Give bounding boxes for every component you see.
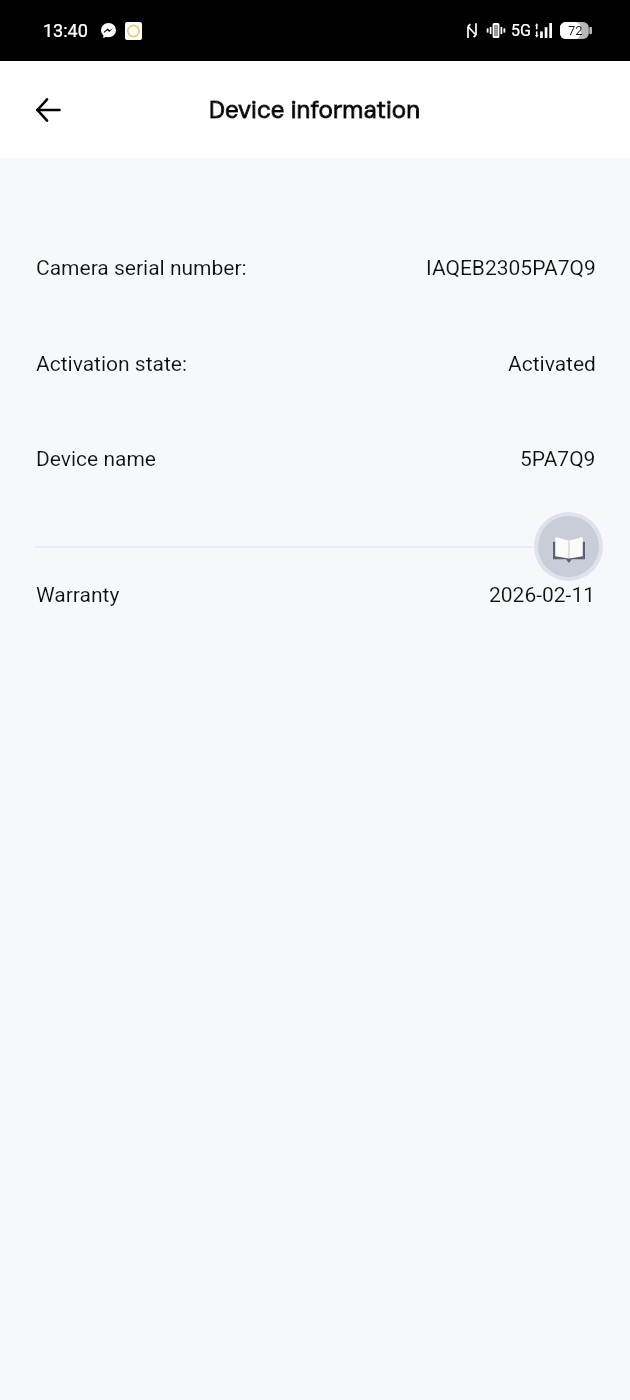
staticText: 2026-02-11 <box>489 583 596 608</box>
staticText: Device information <box>209 94 421 125</box>
button[interactable]: Warranty <box>0 571 630 619</box>
staticText: IAQEB2305PA7Q9 <box>426 256 596 281</box>
button[interactable]: Device name <box>0 435 630 483</box>
staticText: Camera serial number: <box>36 256 247 281</box>
button[interactable]: Manual <box>534 512 603 581</box>
staticText: Activated <box>508 352 596 377</box>
staticText: Warranty <box>36 583 120 608</box>
button[interactable]: Back <box>22 84 74 136</box>
staticText: 72 <box>568 23 583 38</box>
staticText: Device information <box>209 94 421 125</box>
staticText: 13:40 <box>43 20 88 41</box>
button[interactable]: Activation state: <box>0 340 630 388</box>
staticText: Activation state: <box>36 352 188 377</box>
staticText: Device name <box>36 447 156 472</box>
staticText: 5PA7Q9 <box>520 447 596 472</box>
staticText: 5G <box>511 21 531 40</box>
button[interactable]: Camera serial number: <box>0 244 630 292</box>
